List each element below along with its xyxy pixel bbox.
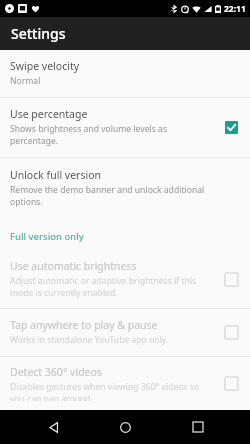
button[interactable]: Unchecked xyxy=(220,372,242,394)
staticText: Full version only xyxy=(10,230,84,243)
staticText: Shows brightness and volume levels as pe… xyxy=(10,123,214,147)
staticText: Use percentage xyxy=(10,107,88,121)
staticText: Remove the demo banner and unlock additi… xyxy=(10,184,236,208)
staticText: 22:11 xyxy=(224,3,246,15)
staticText: Use automatic brightness xyxy=(10,259,137,273)
button[interactable]: Use automatic brightness xyxy=(0,251,250,308)
button[interactable]: Tap anywhere to play & pause xyxy=(0,309,250,356)
button[interactable]: Unchecked xyxy=(220,268,242,290)
button[interactable]: Use percentage xyxy=(0,98,250,157)
staticText: Disables gestures when viewing 360° vide… xyxy=(10,381,214,401)
button[interactable]: Checked xyxy=(220,116,242,138)
staticText: Tap anywhere to play & pause xyxy=(10,318,158,332)
staticText: Detect 360° videos xyxy=(10,365,102,379)
button[interactable]: Back xyxy=(33,410,73,444)
button[interactable]: Unchecked xyxy=(220,321,242,343)
staticText: Unlock full version xyxy=(10,168,102,182)
staticText: Adjust automatic or adaptive brightness … xyxy=(10,275,214,299)
button[interactable]: Swipe velocity xyxy=(0,50,250,97)
staticText: Swipe velocity xyxy=(10,59,80,73)
button[interactable]: Unlock full version xyxy=(0,158,250,218)
button[interactable]: Home xyxy=(105,410,145,444)
button[interactable]: Detect 360° videos xyxy=(0,357,250,410)
staticText: Normal xyxy=(10,75,41,87)
button[interactable]: Recent apps xyxy=(178,410,218,444)
staticText: Works in standalone YouTube app only. xyxy=(10,334,169,346)
staticText: Settings xyxy=(11,24,66,43)
